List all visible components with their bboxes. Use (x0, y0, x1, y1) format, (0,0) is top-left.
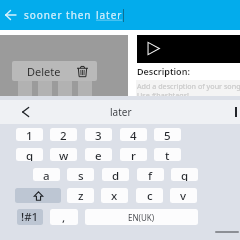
staticText: Add a description of your song (137, 81, 240, 91)
button[interactable]: e (85, 148, 112, 161)
staticText: r (131, 148, 136, 161)
staticText: , (62, 210, 66, 225)
button[interactable]: r (120, 148, 147, 161)
button[interactable]: Shift (15, 188, 61, 203)
button[interactable]: Back (0, 0, 21, 30)
button[interactable]: t (154, 148, 181, 161)
staticText: s (78, 168, 84, 181)
staticText: d (112, 168, 120, 181)
button[interactable]: 1 (16, 128, 43, 141)
button[interactable]: later (96, 100, 146, 124)
staticText: later (110, 105, 132, 119)
button[interactable]: x (101, 188, 128, 203)
staticText: 3 (95, 128, 102, 141)
button[interactable]: 4 (120, 128, 147, 141)
staticText: q (26, 148, 34, 161)
staticText: t (165, 148, 170, 161)
staticText: Description: (137, 65, 190, 77)
button[interactable]: f (137, 168, 164, 181)
button[interactable]: Delete (12, 61, 97, 81)
staticText: w (59, 148, 69, 161)
button[interactable]: d (102, 168, 129, 181)
staticText: Delete (27, 64, 61, 79)
button[interactable]: s (67, 168, 94, 181)
button[interactable]: z (67, 188, 94, 203)
button[interactable]: comma (50, 209, 78, 225)
staticText: 1 (26, 128, 33, 141)
button[interactable]: EN(UK) (85, 209, 198, 225)
staticText: EN(UK) (128, 212, 155, 223)
button[interactable]: Add a description of your song (136, 80, 240, 98)
button[interactable]: Play video (137, 35, 240, 63)
staticText: later (96, 8, 123, 22)
staticText: Use #hashtags! (137, 90, 190, 100)
staticText: f (148, 168, 153, 181)
button[interactable]: g (171, 168, 198, 181)
staticText: g (181, 168, 189, 181)
staticText: 5 (164, 128, 171, 141)
staticText: x (111, 188, 118, 203)
staticText: 2 (60, 128, 67, 141)
button[interactable]: Symbols (17, 209, 43, 225)
button[interactable]: a (33, 168, 60, 181)
staticText: v (180, 188, 187, 203)
staticText: a (43, 168, 50, 181)
staticText: sooner then (24, 8, 96, 22)
button[interactable]: c (136, 188, 163, 203)
staticText: z (78, 188, 84, 203)
staticText: 4 (130, 128, 137, 141)
button[interactable]: 3 (85, 128, 112, 141)
button[interactable]: w (50, 148, 77, 161)
button[interactable]: q (16, 148, 43, 161)
button[interactable]: 5 (154, 128, 181, 141)
button[interactable]: v (170, 188, 197, 203)
button[interactable]: Previous suggestions (0, 100, 50, 124)
staticText: c (147, 188, 153, 203)
staticText: e (95, 148, 102, 161)
staticText: !#1 (21, 209, 39, 225)
button[interactable]: 2 (50, 128, 77, 141)
